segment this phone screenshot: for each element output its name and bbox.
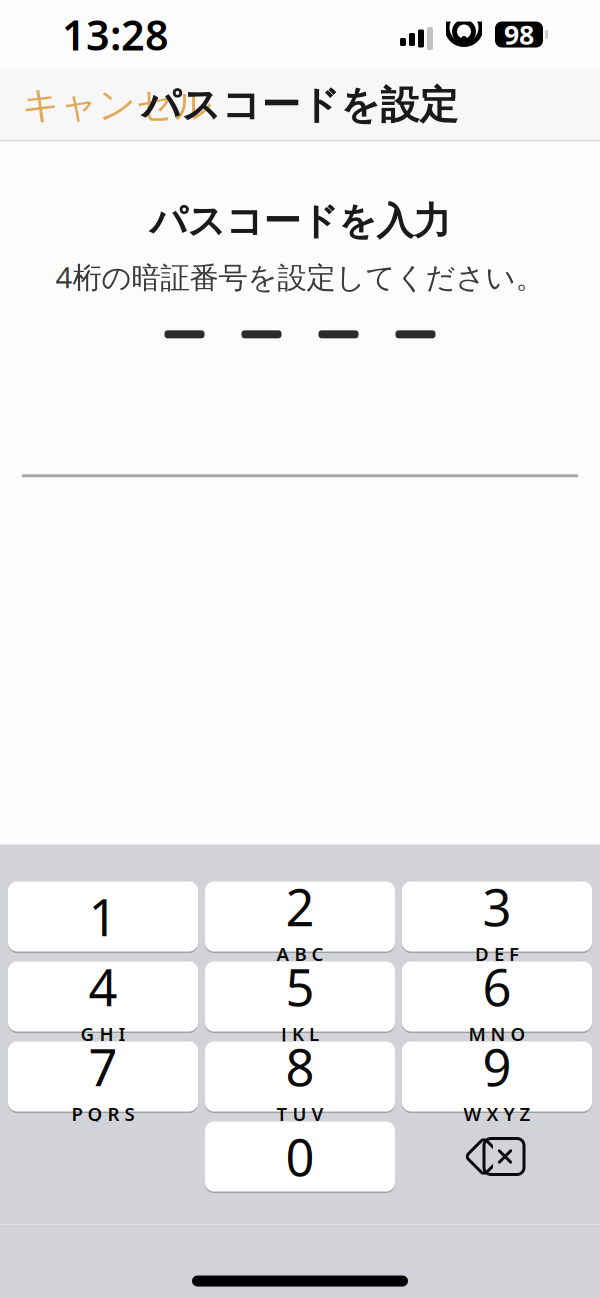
button[interactable]: 4	[8, 960, 198, 1033]
staticText: 2	[285, 873, 314, 940]
staticText: T U V	[276, 1101, 323, 1126]
staticText: パスコードを入力	[149, 198, 450, 244]
staticText: 0	[285, 1123, 314, 1190]
button[interactable]: 1	[8, 880, 198, 953]
button[interactable]: 0	[205, 1120, 395, 1193]
staticText: A B C	[276, 941, 323, 966]
staticText: 6	[482, 953, 511, 1020]
staticText: D E F	[475, 941, 519, 966]
button[interactable]: 7	[8, 1040, 198, 1113]
button[interactable]: 6	[402, 960, 592, 1033]
button[interactable]: 5	[205, 960, 395, 1033]
staticText: 7	[88, 1033, 117, 1100]
staticText: 4桁の暗証番号を設定してください。	[55, 257, 544, 296]
button[interactable]: 9	[402, 1040, 592, 1113]
staticText: 1	[88, 883, 117, 950]
staticText: 4	[88, 953, 117, 1020]
staticText: 9	[482, 1033, 511, 1100]
staticText: パスコードを設定	[141, 81, 458, 129]
staticText: 5	[285, 953, 314, 1020]
staticText: 98	[504, 17, 534, 52]
staticText: G H I	[80, 1021, 125, 1046]
button[interactable]: 8	[205, 1040, 395, 1113]
staticText: W X Y Z	[463, 1101, 530, 1126]
staticText: M N O	[468, 1021, 525, 1046]
staticText: 13:28	[62, 7, 169, 62]
staticText: 8	[285, 1033, 314, 1100]
button[interactable]: 3	[402, 880, 592, 953]
button[interactable]: キャンセル	[0, 68, 234, 142]
staticText: P Q R S	[71, 1101, 134, 1126]
staticText: J K L	[281, 1021, 319, 1046]
staticText: 3	[482, 873, 511, 940]
button[interactable]: 2	[205, 880, 395, 953]
staticText: キャンセル	[22, 82, 212, 128]
button[interactable]: 削除	[402, 1121, 592, 1191]
